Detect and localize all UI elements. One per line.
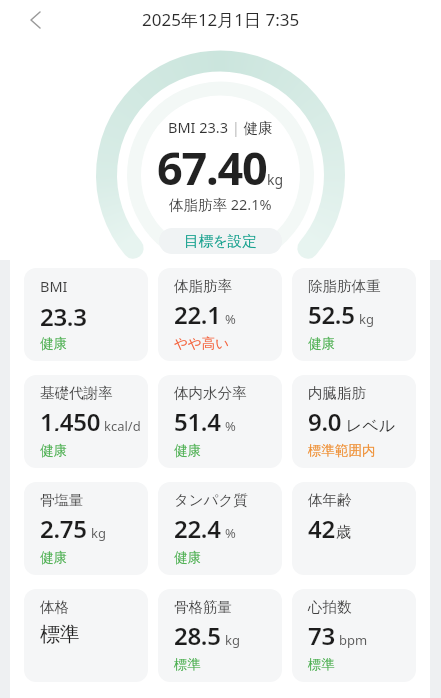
staticText: 目標を設定 — [184, 232, 257, 250]
staticText: 体脂肪率 — [174, 277, 232, 295]
staticText: 2025年12月1日 7:35 — [142, 8, 300, 31]
staticText: 体年齢 — [308, 491, 352, 509]
staticText: kg — [359, 310, 374, 328]
staticText: % — [225, 310, 236, 328]
staticText: 22.4 — [174, 512, 221, 538]
staticText: 骨塩量 — [40, 491, 84, 509]
staticText: 心拍数 — [308, 598, 352, 616]
staticText: 健康 — [40, 442, 67, 459]
button[interactable]: 骨格筋量 — [158, 589, 282, 682]
button[interactable]: 内臓脂肪 — [292, 375, 416, 468]
staticText: 歳 — [336, 523, 351, 542]
staticText: bpm — [339, 631, 368, 649]
staticText: 73 — [308, 619, 335, 645]
staticText: 体脂肪率 22.1% — [169, 194, 272, 214]
staticText: 42 — [308, 512, 335, 538]
button[interactable]: 体格 — [24, 589, 148, 682]
button[interactable]: タンパク質 — [158, 482, 282, 575]
staticText: 67.40 — [157, 137, 267, 197]
staticText: レベル — [346, 416, 396, 436]
staticText: 体内水分率 — [174, 384, 247, 402]
staticText: 標準 — [174, 656, 201, 673]
button[interactable]: 除脂肪体重 — [292, 268, 416, 361]
staticText: kg — [267, 170, 284, 189]
button[interactable]: BMI — [24, 268, 148, 361]
staticText: 骨格筋量 — [174, 598, 232, 616]
staticText: 健康 — [174, 549, 201, 566]
staticText: 52.5 — [308, 298, 355, 324]
staticText: 基礎代謝率 — [40, 384, 113, 402]
staticText: kcal/d — [104, 417, 141, 435]
staticText: 内臓脂肪 — [308, 384, 366, 402]
staticText: 健康 — [174, 442, 201, 459]
button[interactable]: 体脂肪率 — [158, 268, 282, 361]
staticText: 28.5 — [174, 619, 221, 645]
staticText: kg — [225, 631, 240, 649]
staticText: 標準 — [308, 656, 335, 673]
button[interactable]: 目標を設定 — [159, 228, 282, 254]
button[interactable]: 体内水分率 — [158, 375, 282, 468]
staticText: % — [225, 417, 236, 435]
staticText: 健康 — [308, 335, 335, 352]
staticText: 23.3 — [40, 300, 87, 326]
button[interactable] — [26, 10, 46, 30]
button[interactable]: 心拍数 — [292, 589, 416, 682]
button[interactable]: 骨塩量 — [24, 482, 148, 575]
staticText: 健康 — [40, 335, 67, 352]
staticText: BMI — [40, 276, 68, 296]
staticText: % — [225, 524, 236, 542]
staticText: 2.75 — [40, 512, 87, 538]
staticText: BMI 23.3 | 健康 — [168, 117, 273, 137]
staticText: 9.0 — [308, 405, 342, 431]
staticText: 1,450 — [40, 405, 101, 431]
staticText: 体格 — [40, 598, 69, 616]
button[interactable]: 体年齢 — [292, 482, 416, 575]
staticText: kg — [91, 524, 106, 542]
staticText: 22.1 — [174, 298, 221, 324]
staticText: 51.4 — [174, 405, 221, 431]
button[interactable]: 基礎代謝率 — [24, 375, 148, 468]
staticText: やや高い — [174, 335, 229, 352]
staticText: タンパク質 — [174, 491, 248, 509]
staticText: 標準 — [40, 622, 80, 647]
staticText: 標準範囲内 — [308, 442, 376, 459]
staticText: 除脂肪体重 — [308, 277, 381, 295]
staticText: 健康 — [40, 549, 67, 566]
